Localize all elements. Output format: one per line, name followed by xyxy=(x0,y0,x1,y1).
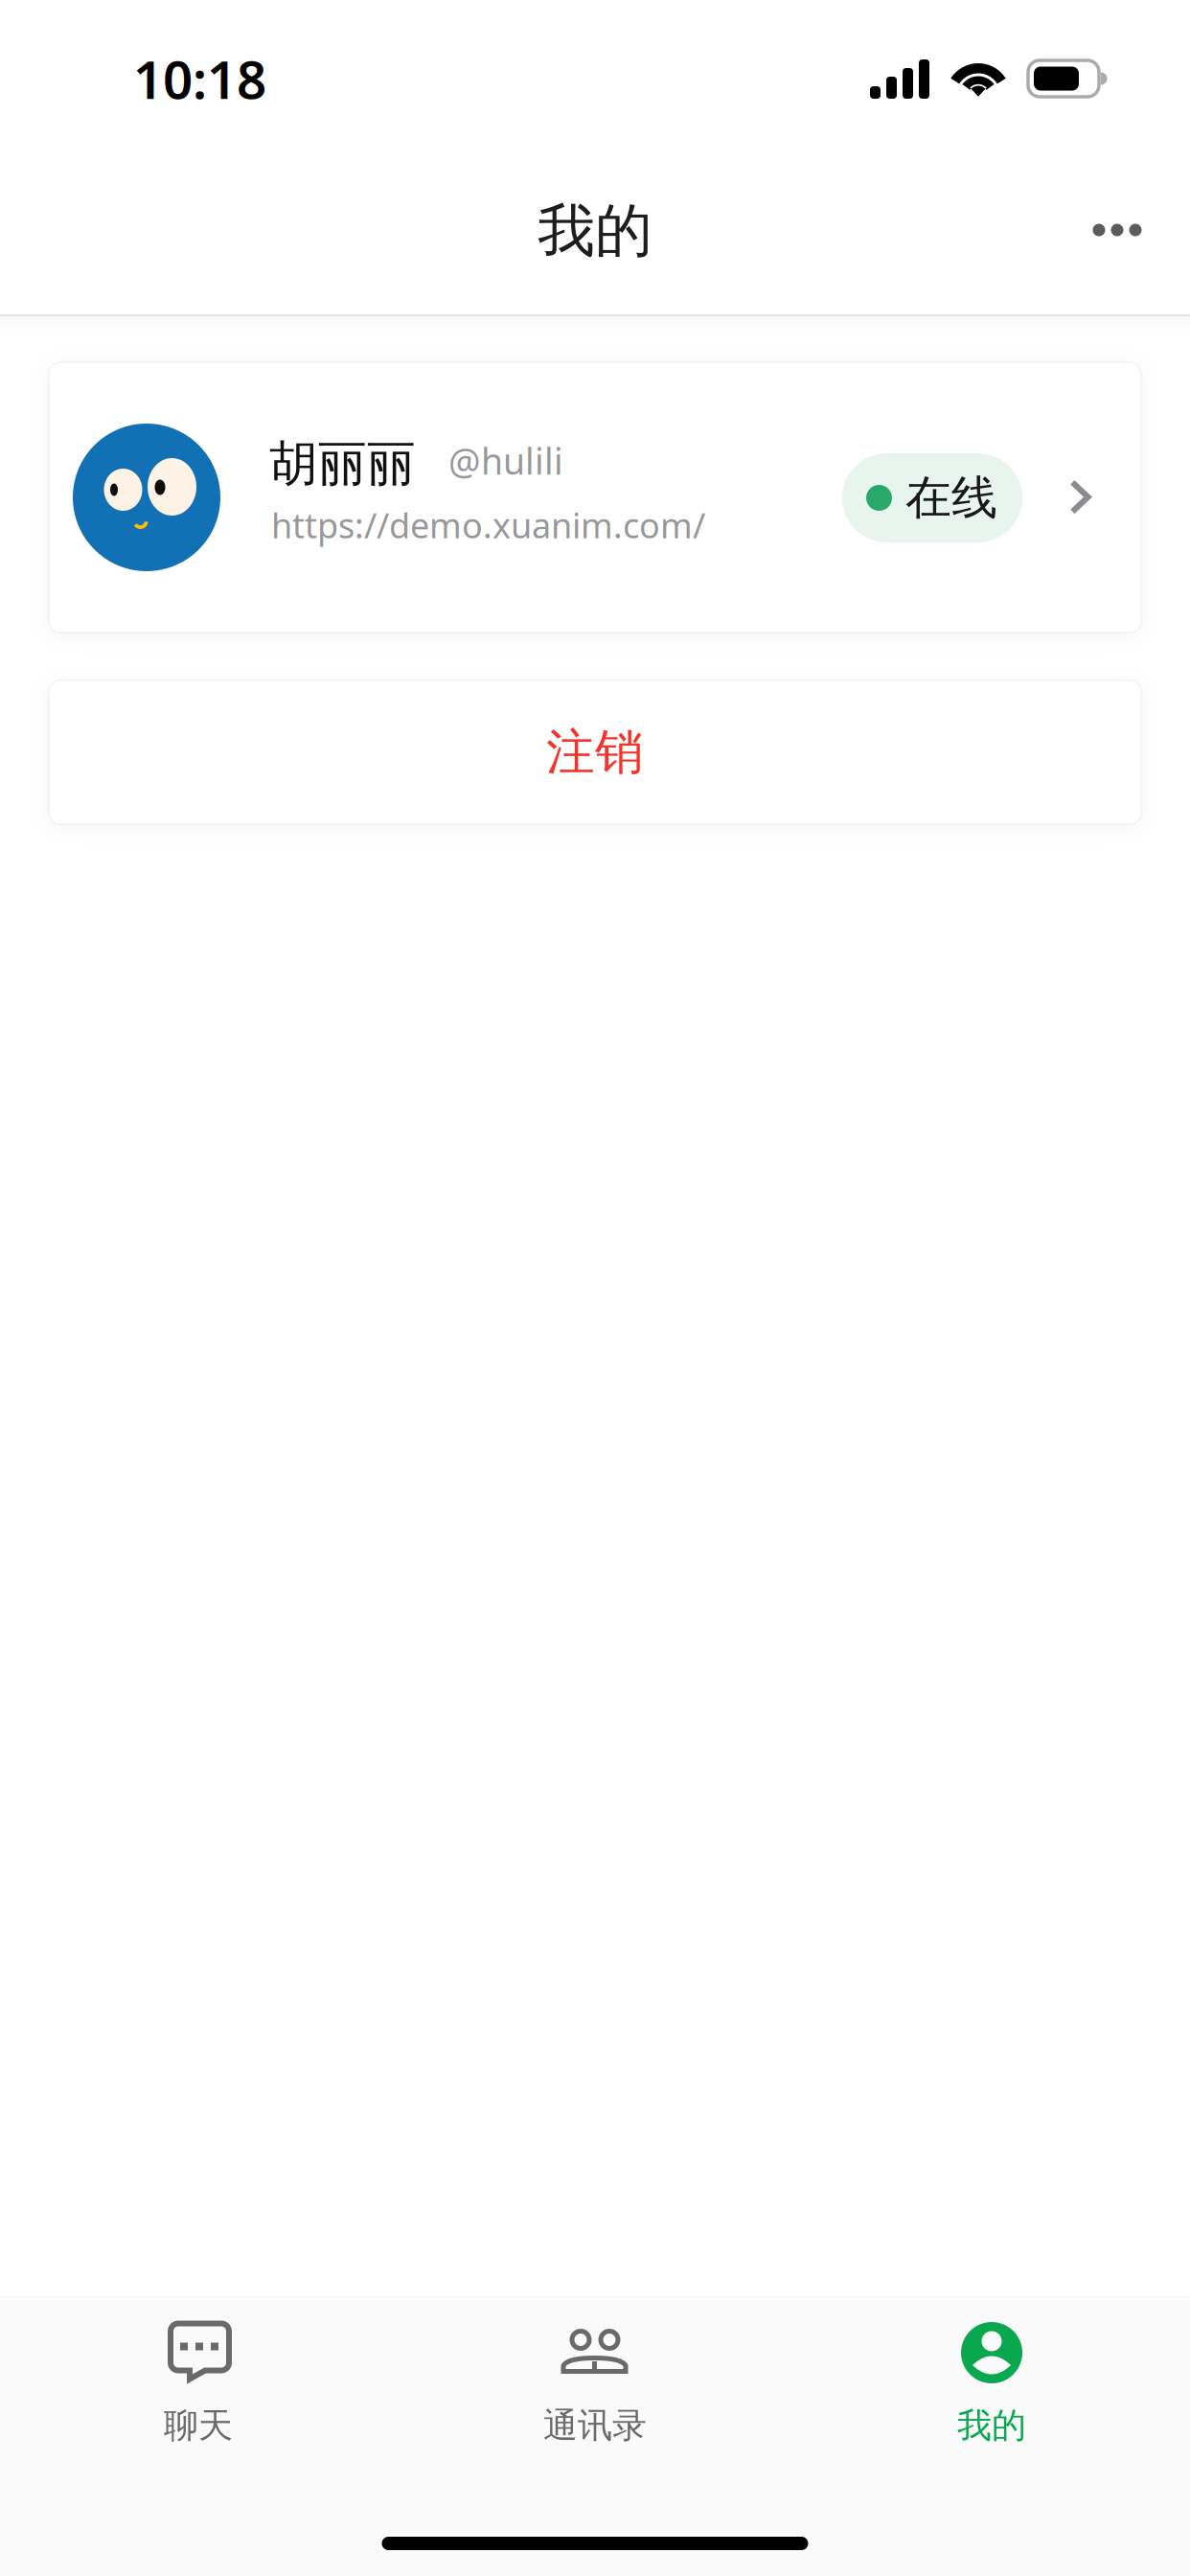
staticText: 我的 xyxy=(957,2404,1026,2447)
staticText: @hulili xyxy=(448,437,563,485)
staticText: 我的 xyxy=(538,196,652,266)
staticText: 在线 xyxy=(905,470,997,526)
staticText: 通讯录 xyxy=(543,2404,647,2447)
button[interactable]: 通讯录 xyxy=(397,2295,793,2453)
button[interactable]: 我的 xyxy=(793,2295,1190,2453)
staticText: https://demo.xuanim.com/ xyxy=(271,502,705,548)
button[interactable]: 注销 xyxy=(49,680,1141,824)
button[interactable]: 胡丽丽 xyxy=(49,362,1141,632)
staticText: 胡丽丽 xyxy=(269,434,416,494)
staticText: 注销 xyxy=(546,722,644,782)
staticText: 10:18 xyxy=(133,44,266,113)
staticText: 聊天 xyxy=(164,2404,233,2447)
button[interactable]: More options xyxy=(1060,172,1175,287)
button[interactable]: 聊天 xyxy=(0,2295,397,2453)
